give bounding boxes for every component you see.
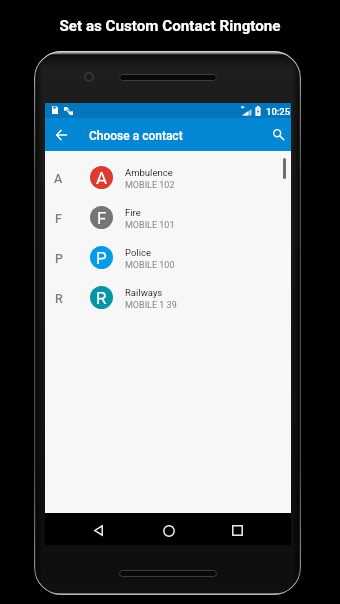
staticText: F (97, 208, 107, 228)
button[interactable]: F (45, 197, 291, 237)
staticText: P (55, 251, 63, 266)
button[interactable]: Recents (225, 518, 250, 543)
button[interactable]: Back (86, 518, 111, 543)
staticText: A (96, 168, 108, 188)
staticText: F (55, 211, 62, 226)
staticText: MOBILE 1 39 (125, 300, 177, 311)
staticText: P (96, 248, 107, 268)
staticText: Fire (125, 207, 141, 218)
staticText: 10:25 (266, 106, 291, 117)
button[interactable]: Back (45, 121, 77, 148)
button[interactable]: Search (264, 120, 293, 149)
button[interactable]: A (45, 157, 291, 197)
staticText: MOBILE 100 (125, 260, 175, 271)
staticText: MOBILE 101 (125, 220, 175, 231)
staticText: R (55, 291, 63, 306)
staticText: Police (125, 247, 151, 258)
staticText: Ambulence (125, 167, 173, 178)
staticText: R (96, 288, 107, 308)
staticText: Set as Custom Contact Ringtone (59, 17, 281, 35)
staticText: MOBILE 102 (125, 180, 175, 191)
staticText: Choose a contact (89, 129, 183, 143)
button[interactable]: P (45, 237, 291, 277)
staticText: Railways (125, 287, 163, 298)
staticText: A (54, 171, 63, 186)
button[interactable]: Home (156, 518, 181, 543)
button[interactable]: R (45, 277, 291, 317)
